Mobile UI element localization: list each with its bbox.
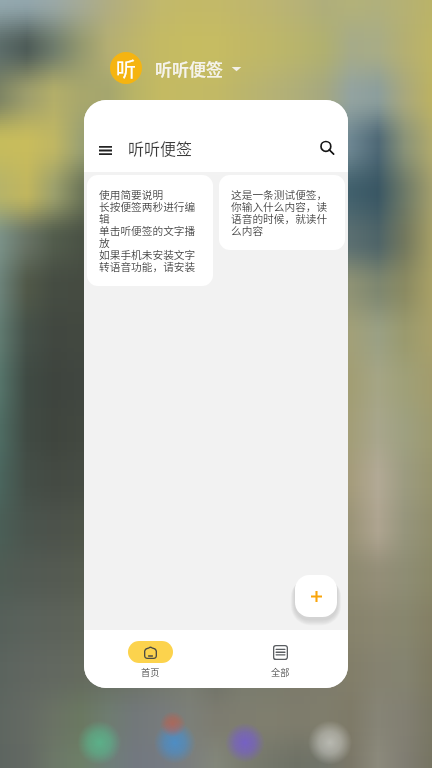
staticText: 这是一条测试便签，你输入什么内容，读语音的时候，就读什么内容 [231,189,333,237]
button[interactable]: 使用简要说明 长按便签两秒进行编辑 单击听便签的文字播放 如果手机未安装文字转语… [87,175,213,286]
button[interactable]: 全部 [216,641,348,678]
staticText: 使用简要说明 长按便签两秒进行编辑 单击听便签的文字播放 如果手机未安装文字转语… [99,189,201,273]
staticText: 听 [116,54,136,83]
staticText: 全部 [271,665,290,678]
button[interactable]: Menu [93,135,117,159]
button[interactable]: Add note [295,575,337,617]
staticText: 首页 [141,665,160,678]
staticText: 听听便签 [155,56,223,81]
button[interactable]: Search [314,133,342,161]
button[interactable]: 首页 [84,641,216,678]
staticText: 听听便签 [128,136,193,159]
button[interactable]: 这是一条测试便签，你输入什么内容，读语音的时候，就读什么内容 [219,175,345,250]
